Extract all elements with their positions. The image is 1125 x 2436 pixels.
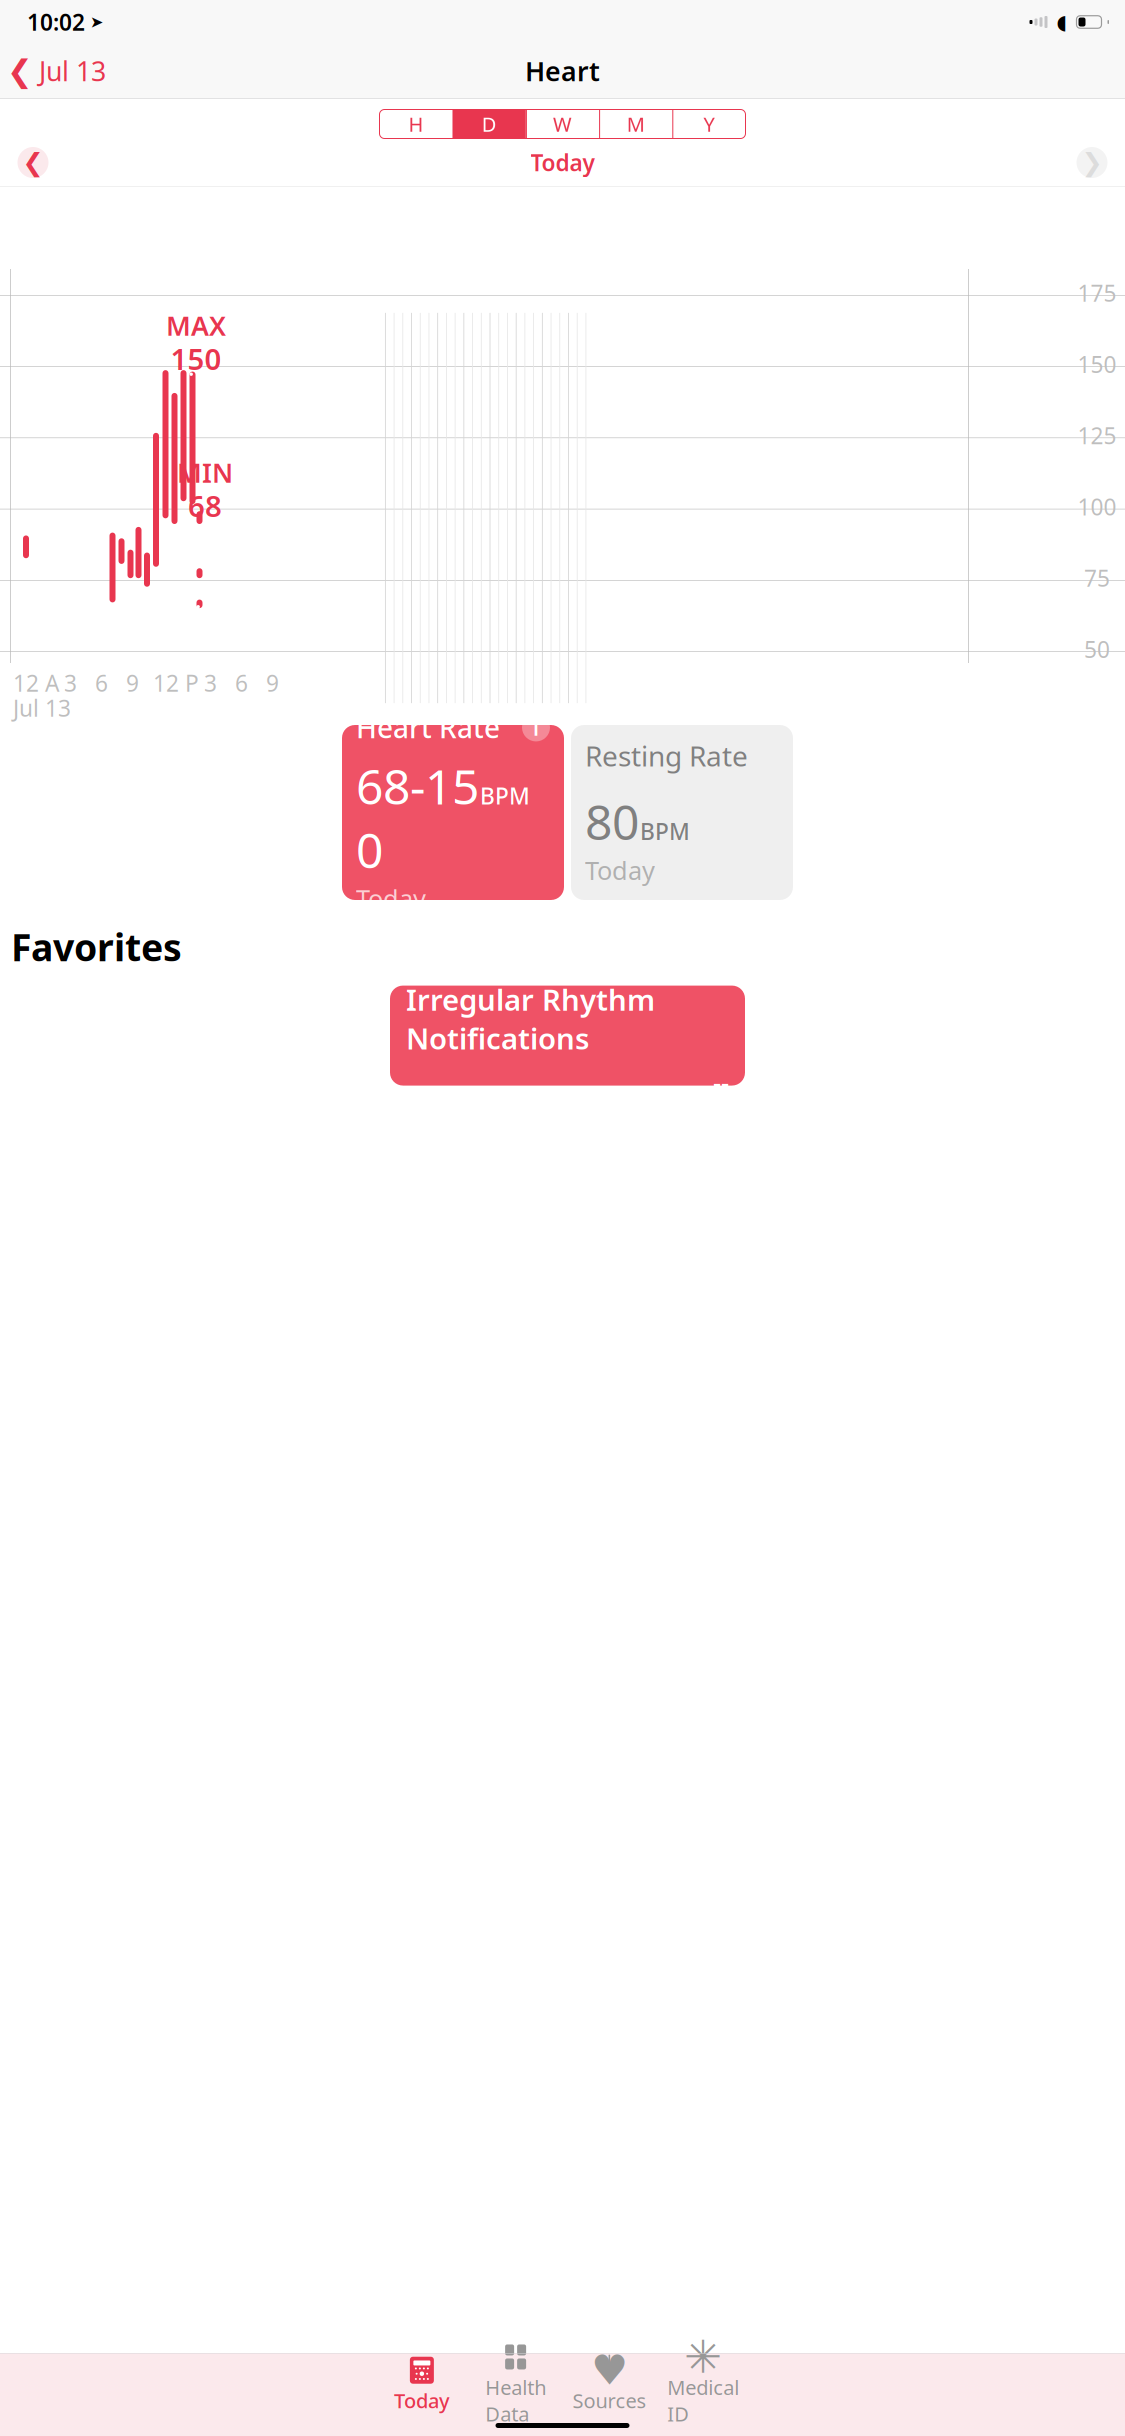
staticText: M xyxy=(627,111,645,137)
button[interactable]: Y xyxy=(672,109,745,138)
button[interactable]: ❮ xyxy=(0,45,116,97)
staticText: 80 xyxy=(585,790,639,853)
button[interactable]: W xyxy=(526,109,599,138)
button[interactable]: Heart Rate xyxy=(342,725,564,900)
staticText: Today xyxy=(585,853,655,887)
staticText: 10:02 xyxy=(27,7,85,37)
staticText: Jul 13 xyxy=(13,693,71,723)
staticText: 150 xyxy=(1077,349,1116,379)
staticText: ◖ xyxy=(1056,11,1067,33)
staticText: 100 xyxy=(1077,492,1116,522)
button[interactable]: Today xyxy=(375,2359,469,2411)
staticText: 9 xyxy=(126,668,139,698)
staticText: Today xyxy=(394,2387,450,2414)
staticText: -- xyxy=(713,1066,729,1099)
staticText: ▼ xyxy=(605,2368,613,2380)
staticText: 6 xyxy=(95,668,108,698)
staticText: 3 xyxy=(204,668,217,698)
button[interactable]: D xyxy=(453,109,526,138)
staticText: Health Data xyxy=(485,2374,546,2427)
staticText: ❮ xyxy=(7,54,33,88)
staticText: 3 xyxy=(64,668,77,698)
staticText: Today xyxy=(356,881,426,915)
staticText: Heart xyxy=(525,53,600,89)
staticText: 68 xyxy=(188,486,222,525)
staticText: BPM xyxy=(480,781,530,811)
staticText: Y xyxy=(703,111,714,137)
staticText: 125 xyxy=(1077,420,1116,450)
staticText: 12 A xyxy=(13,668,59,698)
staticText: MAX xyxy=(166,308,226,343)
staticText: Favorites xyxy=(11,922,182,972)
button[interactable]: M xyxy=(599,109,672,138)
staticText: ❮ xyxy=(22,148,43,177)
button[interactable]: H xyxy=(379,109,453,138)
staticText: 175 xyxy=(1077,278,1116,308)
staticText: D xyxy=(482,111,497,137)
staticText: Resting Rate xyxy=(585,737,748,774)
button[interactable]: Previous day xyxy=(11,140,55,184)
staticText: 75 xyxy=(1084,563,1110,593)
staticText: Medical ID xyxy=(667,2374,739,2427)
staticText: Today xyxy=(530,147,594,177)
button[interactable]: Health Data xyxy=(469,2359,563,2411)
staticText: ✳ xyxy=(684,2331,722,2383)
button[interactable]: ♥ xyxy=(562,2359,656,2411)
staticText: Sources xyxy=(572,2387,646,2414)
staticText: MIN xyxy=(177,455,233,490)
staticText: 68-150 xyxy=(356,754,479,881)
staticText: 50 xyxy=(1084,634,1110,664)
button[interactable]: Next day xyxy=(1070,140,1114,184)
button[interactable]: Resting Rate xyxy=(571,725,793,900)
staticText: ❯ xyxy=(1081,148,1102,177)
staticText: ➤ xyxy=(90,13,103,31)
staticText: Heart Rate xyxy=(356,709,500,746)
staticText: 12 P xyxy=(153,668,199,698)
staticText: H xyxy=(409,111,424,137)
button[interactable]: ✳ xyxy=(656,2359,750,2411)
staticText: BPM xyxy=(640,816,690,846)
staticText: ♥ xyxy=(591,2347,628,2394)
staticText: 150 xyxy=(170,339,221,378)
staticText: Jul 13 xyxy=(39,53,106,89)
staticText: i xyxy=(533,713,539,742)
staticText: Irregular Rhythm Notifications xyxy=(406,980,655,1058)
staticText: 9 xyxy=(266,668,279,698)
staticText: 6 xyxy=(235,668,248,698)
button[interactable]: Irregular Rhythm Notifications xyxy=(390,986,745,1086)
staticText: W xyxy=(553,111,572,137)
